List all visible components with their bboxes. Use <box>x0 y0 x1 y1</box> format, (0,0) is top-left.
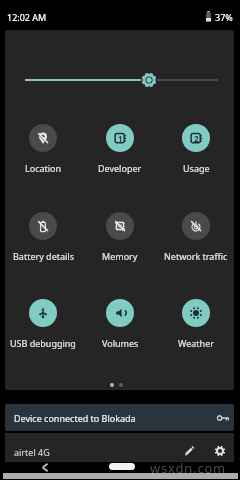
staticText: Weather <box>178 337 214 349</box>
button[interactable] <box>109 463 135 470</box>
button[interactable] <box>38 461 52 474</box>
staticText: Battery details <box>13 250 74 262</box>
button[interactable]: Location <box>5 124 81 174</box>
staticText: 1 <box>118 133 123 144</box>
button[interactable]: Device connected to Blokada <box>5 404 234 431</box>
staticText: Memory <box>102 250 138 262</box>
button[interactable] <box>182 444 196 458</box>
staticText: Location <box>25 162 62 174</box>
button[interactable]: 2 <box>158 124 234 174</box>
button[interactable] <box>213 444 227 458</box>
staticText: 12:02 AM <box>7 11 47 23</box>
button[interactable]: USB debugging <box>5 299 81 349</box>
staticText: Developer <box>98 162 142 174</box>
staticText: Volumes <box>102 337 139 349</box>
button[interactable] <box>5 66 234 94</box>
button[interactable]: Weather <box>158 299 234 349</box>
staticText: USB debugging <box>10 337 76 349</box>
staticText: airtel 4G <box>14 446 50 458</box>
staticText: Device connected to Blokada <box>14 412 136 424</box>
button[interactable]: Volumes <box>82 299 158 349</box>
button[interactable]: 1 <box>82 124 158 174</box>
staticText: 37% <box>215 11 233 23</box>
staticText: wsxdn.com <box>150 459 227 477</box>
staticText: 2 <box>194 133 199 144</box>
staticText: Usage <box>183 162 210 174</box>
button[interactable]: Network traffic <box>158 212 234 262</box>
button[interactable]: Memory <box>82 212 158 262</box>
button[interactable]: Battery details <box>5 212 81 262</box>
staticText: Network traffic <box>164 250 228 262</box>
